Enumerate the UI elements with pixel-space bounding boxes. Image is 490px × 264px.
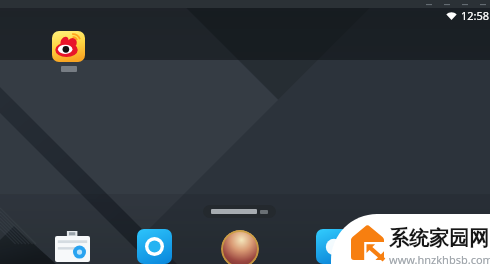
button[interactable]: Weibo — [51, 31, 86, 72]
staticText: www.hnzkhbsb.com — [389, 252, 490, 264]
button[interactable]: Messages — [316, 229, 351, 264]
button[interactable]: App — [137, 229, 172, 264]
button[interactable]: Camera — [55, 231, 90, 262]
staticText: 系统家园网 — [389, 226, 489, 251]
button[interactable]: Contact — [221, 230, 259, 264]
button[interactable] — [203, 205, 276, 218]
staticText: 12:58 — [461, 8, 490, 23]
